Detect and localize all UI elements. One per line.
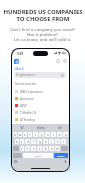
staticText: q [14,133,16,137]
staticText: l [63,140,64,144]
staticText: AT Holding [20,118,35,122]
button[interactable]: App logo [14,59,19,64]
staticText: y [41,133,43,137]
staticText: Back [16,66,24,71]
staticText: disney [37,126,45,130]
button[interactable]: f [31,139,36,144]
button[interactable]: h [43,139,48,144]
staticText: r [29,133,31,137]
staticText: t [35,133,36,137]
button[interactable]: AT&T [15,102,65,109]
staticText: Accenture [20,97,34,101]
button[interactable]: k [55,139,60,144]
button[interactable]: Back [14,66,24,71]
button[interactable]: c [31,146,36,151]
staticText: s [21,140,23,144]
staticText: a [16,140,18,144]
staticText: v [39,147,41,151]
button[interactable]: b [43,146,48,151]
staticText: AT&T [20,104,27,108]
button[interactable]: AT Holding [15,116,65,123]
button[interactable]: ATI Corp [15,123,65,130]
button[interactable]: o [57,132,62,137]
button[interactable]: u [45,132,50,137]
button[interactable]: IBM Corporation [15,88,65,95]
button[interactable]: s [20,139,24,144]
staticText: Recent searches [15,82,37,86]
staticText: k [57,140,59,144]
button[interactable]: j [49,139,54,144]
staticText: x [27,147,29,151]
staticText: Organization [16,73,35,77]
button[interactable]: Emoji keyboard [14,160,17,163]
button[interactable]: z [20,146,24,151]
staticText: g [39,140,41,144]
button[interactable]: w [18,132,22,137]
staticText: HUNDREDS US COMPANIES TO CHOOSE FROM [3,8,83,23]
staticText: d [27,140,29,144]
button[interactable]: i [51,132,56,137]
button[interactable]: Accenture [15,95,65,102]
button[interactable]: n [49,146,54,151]
button[interactable]: p [63,132,68,137]
staticText: c [33,147,35,151]
staticText: “di” [20,126,24,130]
staticText: z [21,147,23,151]
staticText: j [51,140,52,144]
button[interactable]: t [33,132,38,137]
button[interactable]: T-Mobile US [15,109,65,116]
staticText: 9:41 [17,52,24,56]
button[interactable]: l [61,139,66,144]
staticText: e [24,133,26,137]
button[interactable]: m [55,146,60,151]
staticText: Can't find a company you need? Not a pro… [10,26,75,42]
staticText: o [59,133,61,137]
staticText: u [47,133,49,137]
staticText: search [57,154,65,157]
staticText: w [19,133,22,137]
button[interactable]: Organization [14,72,66,78]
button[interactable]: d [25,139,30,144]
button[interactable]: e [23,132,27,137]
staticText: did [58,126,62,130]
staticText: h [45,140,47,144]
button[interactable]: search [54,153,68,158]
staticText: space [35,154,42,157]
button[interactable]: y [39,132,44,137]
staticText: ATI Corp [20,125,32,129]
staticText: i [53,133,54,137]
staticText: m [56,147,59,151]
button[interactable]: Profile [63,59,67,63]
staticText: n [51,147,53,151]
staticText: T-Mobile US [20,111,37,115]
staticText: p [65,133,67,137]
button[interactable]: Saved [56,59,60,63]
staticText: f [33,140,34,144]
staticText: b [45,147,47,151]
staticText: IBM Corporation [20,90,43,94]
button[interactable]: Dictation [64,160,67,163]
button[interactable]: space [23,153,53,158]
button[interactable]: a [15,139,19,144]
button[interactable]: q [13,132,17,137]
button[interactable]: g [37,139,42,144]
button[interactable]: r [28,132,32,137]
button[interactable]: x [25,146,30,151]
button[interactable]: v [37,146,42,151]
